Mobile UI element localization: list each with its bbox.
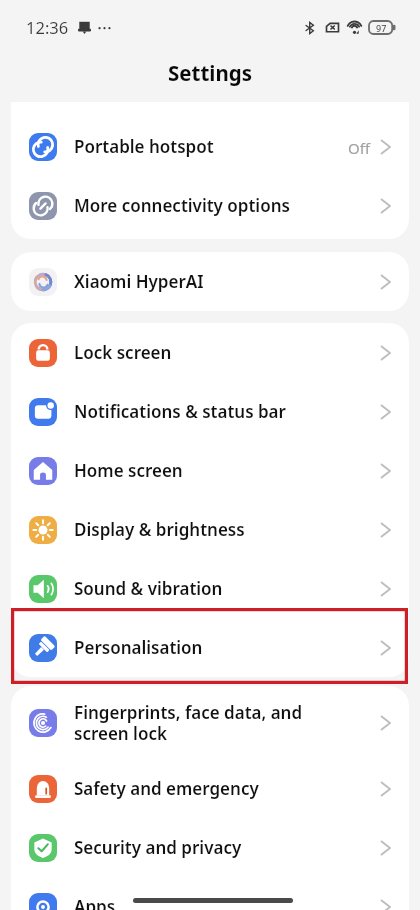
staticText: Notifications & status bar — [74, 400, 361, 423]
staticText: Xiaomi HyperAI — [74, 270, 361, 293]
button[interactable]: Personalisation — [11, 618, 409, 677]
button[interactable]: Display & brightness — [11, 500, 409, 559]
staticText: Settings — [168, 59, 253, 87]
button[interactable]: Sound & vibration — [11, 559, 409, 618]
staticText: Apps — [74, 895, 361, 910]
staticText: Sound & vibration — [74, 577, 361, 600]
button[interactable]: Safety and emergency — [11, 759, 409, 818]
staticText: Display & brightness — [74, 518, 361, 541]
button[interactable]: Xiaomi HyperAI — [11, 252, 409, 311]
staticText: 97 — [376, 22, 387, 34]
button[interactable]: Security and privacy — [11, 818, 409, 877]
staticText: Security and privacy — [74, 836, 361, 859]
button[interactable]: Portable hotspot — [11, 117, 409, 176]
button[interactable]: Apps — [11, 877, 409, 910]
button[interactable]: Home screen — [11, 441, 409, 500]
staticText: Safety and emergency — [74, 777, 361, 800]
button[interactable]: More connectivity options — [11, 176, 409, 235]
button[interactable]: Notifications & status bar — [11, 382, 409, 441]
staticText: Home screen — [74, 459, 361, 482]
staticText: More connectivity options — [74, 194, 361, 217]
staticText: 12:36 — [26, 16, 69, 38]
staticText: Portable hotspot — [74, 135, 334, 158]
button[interactable]: Lock screen — [11, 323, 409, 382]
staticText: Off — [348, 138, 371, 158]
button[interactable]: Fingerprints, face data, and screen lock — [11, 686, 409, 759]
staticText: Personalisation — [74, 636, 361, 659]
staticText: Fingerprints, face data, and screen lock — [74, 701, 361, 745]
staticText: Lock screen — [74, 341, 361, 364]
